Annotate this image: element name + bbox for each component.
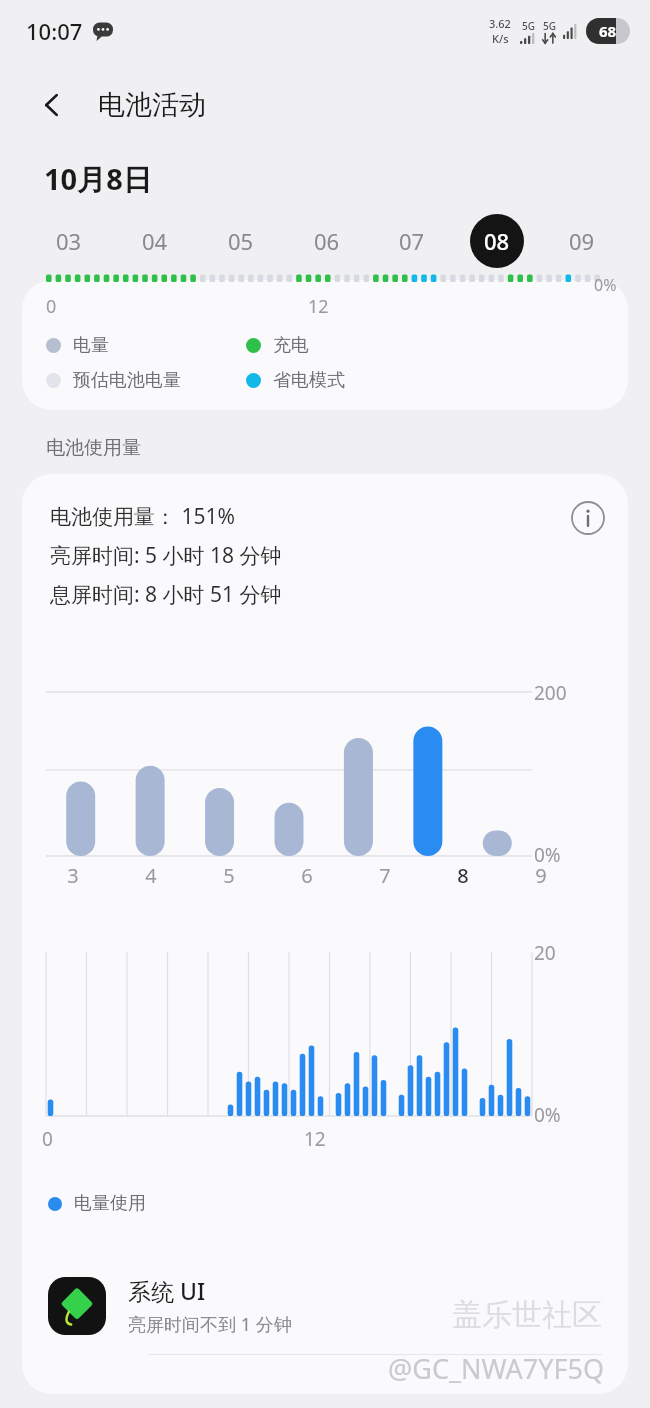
- staticText: 8: [457, 862, 469, 889]
- button[interactable]: 04: [112, 214, 198, 268]
- button[interactable]: 08: [454, 214, 539, 268]
- staticText: 0: [42, 1126, 53, 1152]
- button[interactable]: 09: [539, 214, 624, 268]
- staticText: 68: [599, 21, 617, 41]
- staticText: 息屏时间: 8 小时 51 分钟: [50, 580, 282, 609]
- button[interactable]: 03: [26, 214, 112, 268]
- staticText: 06: [314, 226, 340, 256]
- staticText: 电池使用量： 151%: [50, 502, 235, 531]
- staticText: 0: [46, 294, 57, 319]
- staticText: K/s: [492, 31, 509, 46]
- staticText: 05: [228, 226, 254, 256]
- staticText: 10月8日: [44, 159, 152, 199]
- button[interactable]: 系统 UI: [22, 1258, 628, 1354]
- staticText: 9: [535, 862, 547, 889]
- staticText: 03: [56, 226, 82, 256]
- staticText: 12: [304, 1126, 326, 1152]
- staticText: 5: [223, 862, 235, 889]
- button[interactable]: 05: [198, 214, 284, 268]
- staticText: 10:07: [26, 16, 83, 46]
- button[interactable]: 06: [284, 214, 369, 268]
- staticText: 电池使用量: [46, 436, 141, 460]
- staticText: 200: [534, 680, 567, 706]
- staticText: 20: [534, 940, 556, 966]
- staticText: 04: [142, 226, 168, 256]
- staticText: 3: [67, 862, 79, 889]
- staticText: 5G: [543, 19, 556, 33]
- staticText: 5G: [522, 19, 535, 33]
- staticText: @GC_NWA7YF5Q: [388, 1350, 605, 1387]
- staticText: 电池活动: [98, 88, 206, 122]
- staticText: 6: [301, 862, 313, 889]
- staticText: 12: [308, 294, 329, 319]
- staticText: 4: [145, 862, 157, 889]
- staticText: 07: [399, 226, 425, 256]
- staticText: 0%: [534, 842, 561, 868]
- staticText: 3.62: [489, 16, 511, 31]
- staticText: 充电: [273, 334, 309, 357]
- staticText: 09: [569, 226, 595, 256]
- staticText: 7: [379, 862, 391, 889]
- staticText: 预估电池电量: [73, 369, 181, 392]
- staticText: 亮屏时间不到 1 分钟: [128, 1312, 292, 1337]
- staticText: 亮屏时间: 5 小时 18 分钟: [50, 541, 282, 570]
- staticText: 电量使用: [74, 1192, 146, 1215]
- staticText: 08: [484, 226, 510, 256]
- staticText: 0%: [594, 274, 617, 296]
- staticText: 系统 UI: [128, 1275, 206, 1306]
- button[interactable]: Back: [26, 79, 78, 131]
- staticText: 盖乐世社区: [452, 1296, 602, 1334]
- staticText: 省电模式: [273, 369, 345, 392]
- button[interactable]: 07: [369, 214, 454, 268]
- staticText: 0%: [534, 1102, 561, 1128]
- button[interactable]: Info: [562, 492, 614, 544]
- staticText: 电量: [73, 334, 109, 357]
